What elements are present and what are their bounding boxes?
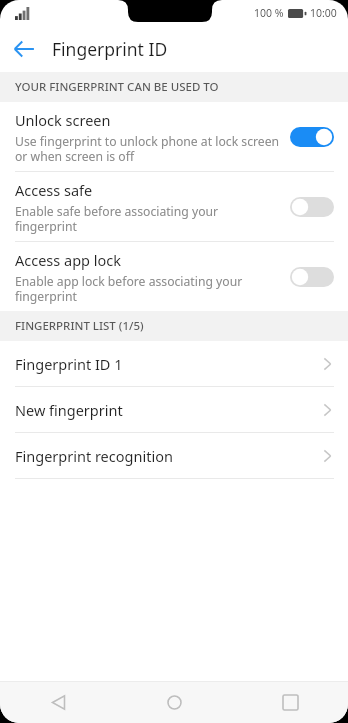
button[interactable]: Back [0, 682, 116, 723]
staticText: Enable safe before associating your fing… [15, 203, 219, 234]
staticText: Fingerprint recognition [15, 446, 323, 466]
button[interactable]: Access safe [0, 172, 348, 241]
button[interactable]: Back [0, 26, 48, 72]
button[interactable]: Unlock screen [290, 127, 334, 147]
button[interactable]: Access app lock [290, 267, 334, 287]
staticText: New fingerprint [15, 400, 323, 420]
button[interactable]: Fingerprint ID 1 [0, 341, 348, 386]
staticText: YOUR FINGERPRINT CAN BE USED TO [15, 79, 219, 95]
staticText: Access safe [15, 180, 93, 200]
button[interactable]: Fingerprint recognition [0, 433, 348, 478]
staticText: Use fingerprint to unlock phone at lock … [15, 133, 280, 164]
staticText: FINGERPRINT LIST (1/5) [15, 318, 144, 334]
staticText: Fingerprint ID 1 [15, 354, 323, 374]
staticText: Enable app lock before associating your … [15, 273, 243, 304]
button[interactable]: Access safe [290, 197, 334, 217]
button[interactable]: Access app lock [0, 242, 348, 311]
button[interactable]: Recent apps [232, 682, 348, 723]
staticText: 100 % [254, 6, 284, 20]
staticText: 10:00 [310, 6, 337, 20]
staticText: Fingerprint ID [52, 37, 168, 61]
button[interactable]: Unlock screen [0, 102, 348, 171]
button[interactable]: New fingerprint [0, 387, 348, 432]
button[interactable]: Home [116, 682, 232, 723]
staticText: Access app lock [15, 250, 121, 270]
staticText: Unlock screen [15, 110, 111, 130]
